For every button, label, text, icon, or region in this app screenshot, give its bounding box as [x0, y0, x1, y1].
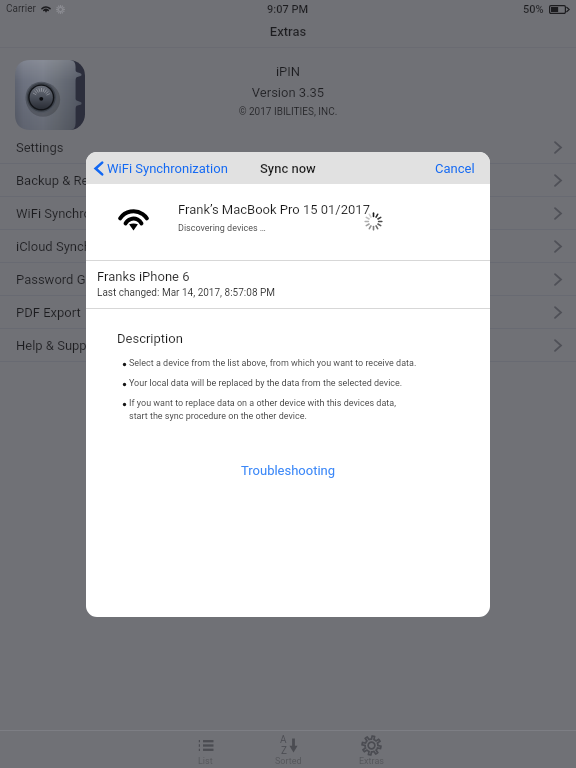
staticText: A	[280, 734, 287, 746]
staticText: Extras	[0, 24, 576, 39]
button[interactable]: Troubleshooting	[229, 459, 348, 482]
staticText: 50%	[523, 3, 544, 16]
button[interactable]: Backup & Restore	[0, 164, 576, 196]
staticText: Troubleshooting	[241, 463, 336, 478]
staticText: Discovering devices …	[178, 223, 266, 234]
staticText: Cancel	[435, 161, 475, 176]
staticText: iCloud Synchronization	[16, 239, 149, 254]
staticText: Your local data will be replaced by the …	[129, 378, 403, 389]
staticText: PDF Export	[16, 305, 81, 320]
staticText: Last changed: Mar 14, 2017, 8:57:08 PM	[97, 287, 276, 299]
staticText: If you want to replace data on a other d…	[129, 398, 396, 421]
staticText: WiFi Synchronization	[107, 161, 228, 176]
staticText: Password Generator	[16, 272, 134, 287]
button[interactable]: Frank’s MacBook Pro 15 01/2017	[86, 184, 490, 260]
staticText: iPIN	[0, 64, 576, 79]
staticText: 9:07 PM	[267, 3, 309, 16]
staticText: List	[198, 756, 213, 767]
button[interactable]: iCloud Synchronization	[0, 230, 576, 262]
staticText: Carrier	[6, 3, 36, 15]
staticText: Extras	[359, 756, 384, 767]
staticText: Description	[117, 331, 183, 346]
staticText: Sync now	[260, 161, 316, 176]
button[interactable]: PDF Export	[0, 296, 576, 328]
button[interactable]: Cancel	[420, 155, 490, 182]
button[interactable]: WiFi Synchronization	[86, 161, 236, 176]
button[interactable]: WiFi Synchronization	[0, 197, 576, 229]
staticText: Select a device from the list above, fro…	[129, 358, 417, 369]
staticText: Z	[281, 745, 287, 757]
button[interactable]: List	[164, 730, 247, 768]
button[interactable]: Franks iPhone 6	[86, 261, 490, 308]
staticText: Sorted	[275, 756, 302, 767]
button[interactable]: Help & Support	[0, 329, 576, 361]
button[interactable]: Settings	[0, 131, 576, 163]
staticText: Franks iPhone 6	[97, 269, 190, 284]
staticText: Version 3.35	[0, 85, 576, 100]
staticText: WiFi Synchronization	[16, 206, 137, 221]
button[interactable]: Password Generator	[0, 263, 576, 295]
staticText: Help & Support	[16, 338, 104, 353]
staticText: Backup & Restore	[16, 173, 118, 188]
button[interactable]: Extras	[330, 730, 413, 768]
staticText: Frank’s MacBook Pro 15 01/2017	[178, 202, 370, 217]
staticText: Settings	[16, 140, 64, 155]
staticText: © 2017 IBILITIES, INC.	[0, 106, 576, 118]
button[interactable]: A	[247, 730, 330, 768]
